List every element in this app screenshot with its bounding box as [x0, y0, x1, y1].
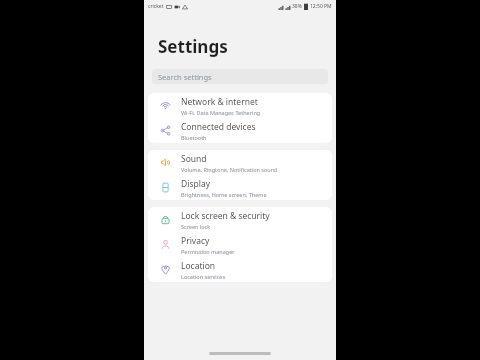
staticText: Connected devices [181, 121, 256, 133]
button[interactable]: Sound [148, 150, 332, 175]
staticText: Volume, Ringtone, Notification sound [181, 166, 278, 173]
button[interactable]: Network & internet [148, 93, 332, 118]
staticText: cricket [148, 3, 164, 10]
button[interactable]: Location [148, 257, 332, 282]
staticText: Location [181, 260, 216, 272]
staticText: 38% [292, 3, 302, 10]
staticText: Brightness, Home screen, Theme [181, 191, 267, 198]
button[interactable]: Search settings [152, 69, 328, 84]
staticText: Search settings [158, 72, 212, 82]
staticText: Settings [158, 35, 228, 58]
staticText: Bluetooth [181, 134, 207, 141]
button[interactable]: Display [148, 175, 332, 200]
staticText: Privacy [181, 235, 210, 247]
staticText: Network & internet [181, 96, 258, 108]
button[interactable]: Lock screen & security [148, 207, 332, 232]
button[interactable]: Privacy [148, 232, 332, 257]
staticText: Screen lock [181, 223, 211, 230]
staticText: Lock screen & security [181, 210, 270, 222]
button[interactable]: Connected devices [148, 118, 332, 143]
staticText: 12:50 PM [310, 3, 332, 10]
staticText: Location services [181, 273, 226, 280]
staticText: Wi-Fi, Data Manager, Tethering [181, 109, 261, 116]
staticText: Display [181, 178, 210, 190]
staticText: Permission manager [181, 248, 235, 255]
staticText: Sound [181, 153, 207, 165]
